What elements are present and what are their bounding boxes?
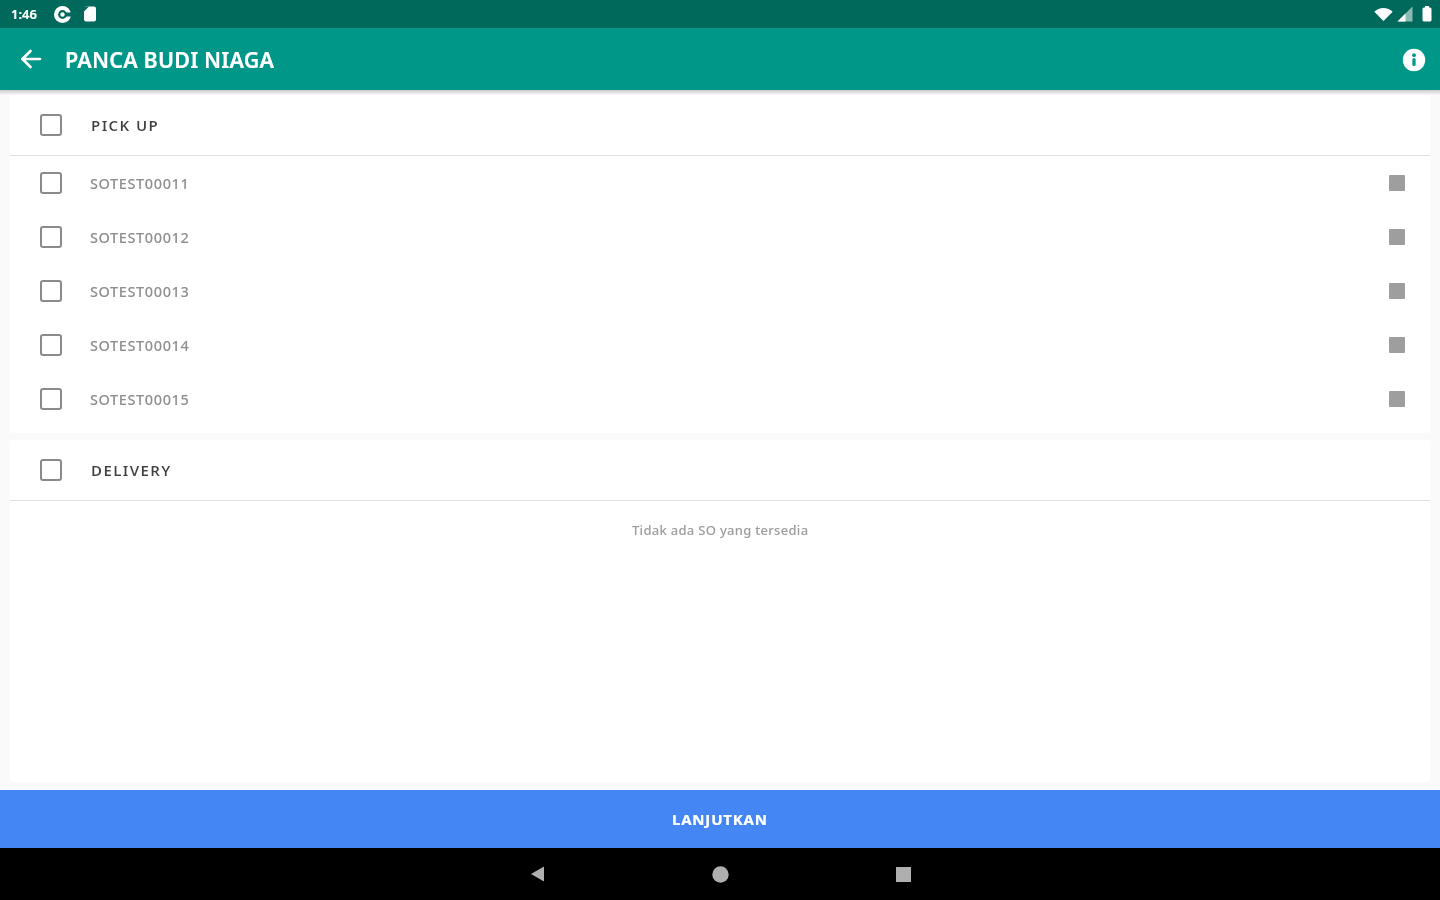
staticText: PANCA BUDI NIAGA [65, 45, 275, 74]
staticText: SOTEST00011 [90, 173, 190, 193]
button[interactable]: SOTEST00015 [10, 372, 1430, 426]
button[interactable]: SOTEST00011 [10, 156, 1430, 210]
staticText: Tidak ada SO yang tersedia [632, 521, 809, 539]
staticText: SOTEST00015 [90, 389, 190, 409]
staticText: DELIVERY [91, 460, 172, 480]
button[interactable] [512, 848, 564, 900]
staticText: SOTEST00012 [90, 227, 190, 247]
button[interactable]: LANJUTKAN [0, 790, 1440, 848]
button[interactable] [877, 848, 929, 900]
staticText: 1:46 [11, 5, 37, 23]
button[interactable]: PICK UP [10, 95, 1430, 155]
staticText: LANJUTKAN [672, 809, 768, 829]
staticText: SOTEST00013 [90, 281, 190, 301]
button[interactable]: SOTEST00013 [10, 264, 1430, 318]
button[interactable] [0, 28, 62, 90]
button[interactable]: DELIVERY [10, 440, 1430, 500]
button[interactable] [1387, 33, 1440, 86]
button[interactable]: SOTEST00014 [10, 318, 1430, 372]
button[interactable] [694, 848, 746, 900]
button[interactable]: SOTEST00012 [10, 210, 1430, 264]
staticText: PICK UP [91, 115, 160, 135]
staticText: SOTEST00014 [90, 335, 190, 355]
